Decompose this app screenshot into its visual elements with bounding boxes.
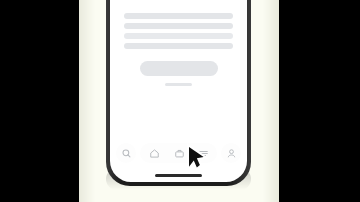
button[interactable]: Profile <box>221 143 241 163</box>
button[interactable]: Bag <box>169 143 189 163</box>
button[interactable] <box>140 61 218 76</box>
button[interactable]: Menu <box>193 143 213 163</box>
button[interactable]: Search <box>116 143 136 163</box>
button[interactable]: Home <box>144 143 164 163</box>
